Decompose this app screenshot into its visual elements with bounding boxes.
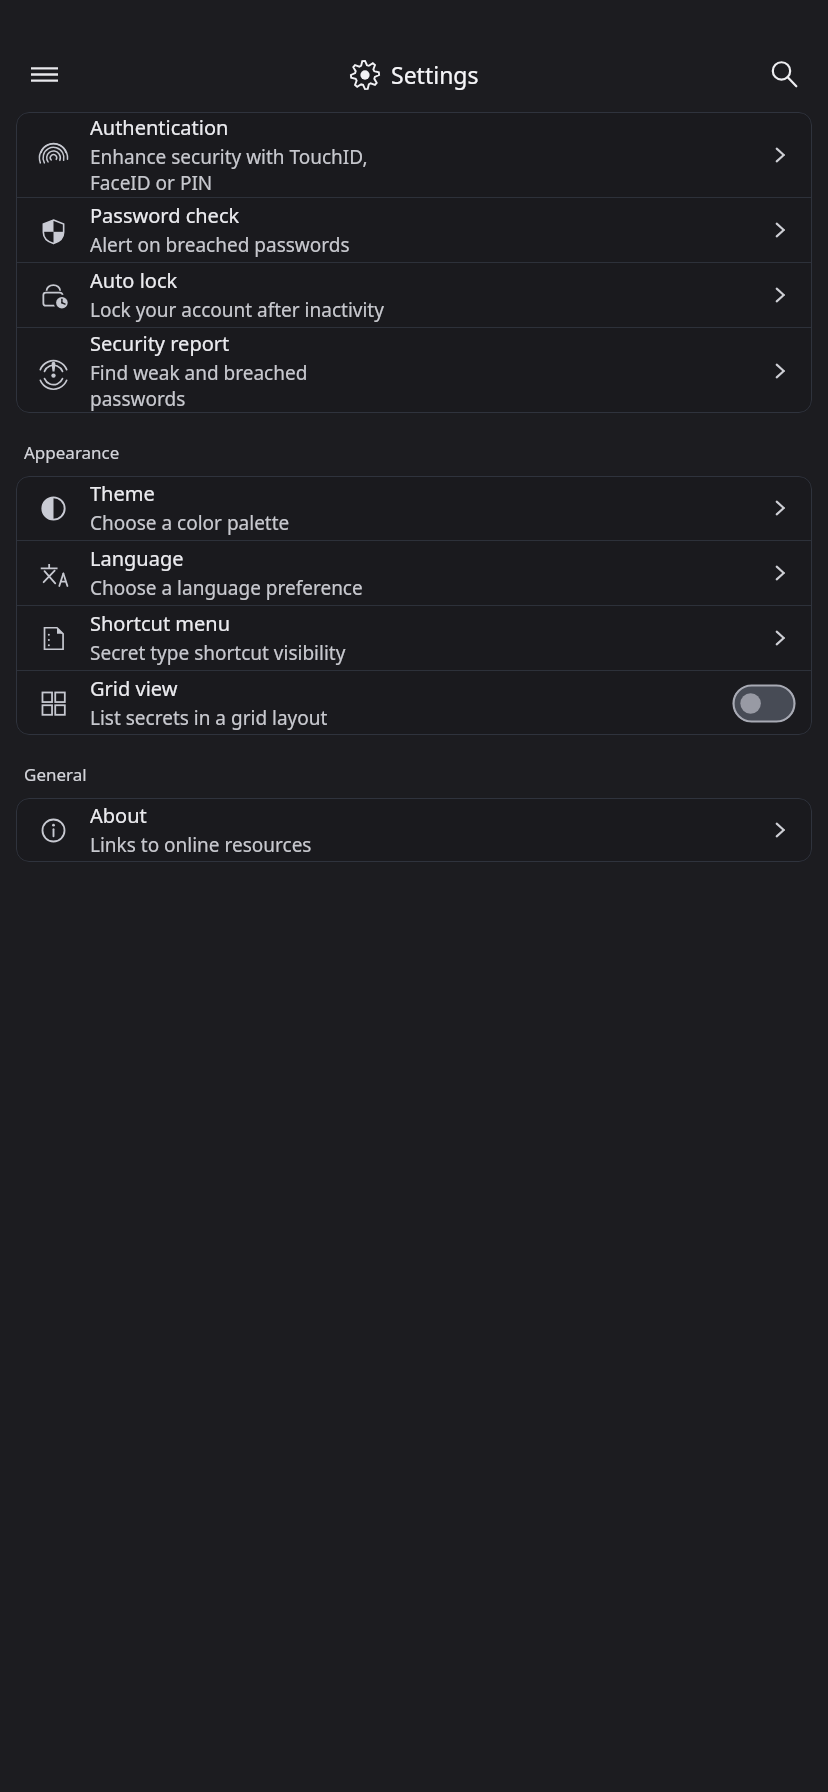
- staticText: Shortcut menu: [90, 610, 230, 637]
- staticText: Links to online resources: [90, 832, 312, 858]
- button[interactable]: Language: [16, 541, 812, 605]
- button[interactable]: Authentication: [16, 112, 812, 197]
- staticText: Password check: [90, 202, 240, 229]
- staticText: Settings: [391, 59, 479, 90]
- button[interactable]: Open navigation menu: [18, 48, 70, 100]
- button[interactable]: Security report: [16, 328, 812, 413]
- staticText: Authentication: [90, 114, 229, 141]
- staticText: Theme: [90, 480, 155, 507]
- button[interactable]: Shortcut menu: [16, 606, 812, 670]
- staticText: Appearance: [24, 441, 120, 464]
- button[interactable]: Theme: [16, 476, 812, 540]
- staticText: Find weak and breached passwords: [90, 360, 308, 412]
- staticText: Enhance security with TouchID, FaceID or…: [90, 144, 368, 196]
- staticText: List secrets in a grid layout: [90, 705, 328, 731]
- button[interactable]: Password check: [16, 198, 812, 262]
- staticText: Alert on breached passwords: [90, 232, 350, 258]
- button[interactable]: Grid view, off: [732, 684, 796, 723]
- staticText: Security report: [90, 330, 230, 357]
- staticText: Choose a language preference: [90, 575, 363, 601]
- staticText: About: [90, 802, 147, 829]
- button[interactable]: Grid view: [16, 671, 812, 735]
- staticText: Grid view: [90, 675, 178, 702]
- button[interactable]: Auto lock: [16, 263, 812, 327]
- staticText: Secret type shortcut visibility: [90, 640, 346, 666]
- button[interactable]: Search: [758, 48, 810, 100]
- staticText: Lock your account after inactivity: [90, 297, 384, 323]
- button[interactable]: About: [16, 798, 812, 862]
- staticText: Language: [90, 545, 184, 572]
- staticText: Choose a color palette: [90, 510, 290, 536]
- staticText: General: [24, 763, 87, 786]
- staticText: Auto lock: [90, 267, 178, 294]
